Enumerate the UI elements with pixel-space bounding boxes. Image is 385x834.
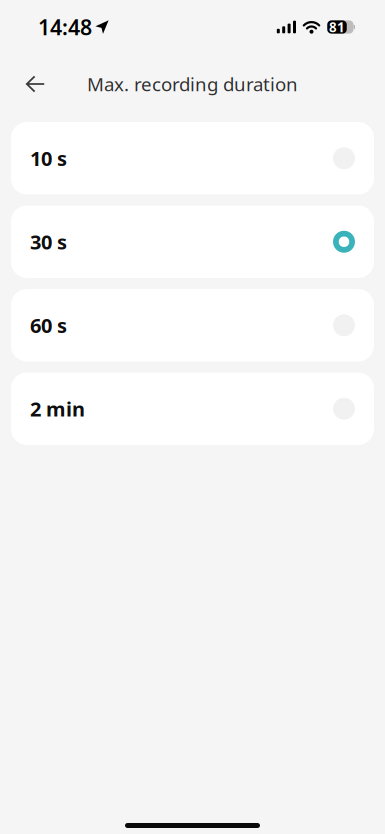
button[interactable]: 10 s [11,122,374,194]
staticText: 14:48 [38,13,92,41]
staticText: 60 s [30,312,67,339]
staticText: 2 min [30,395,85,422]
button[interactable]: Back [0,54,59,114]
staticText: Max. recording duration [87,72,298,96]
button[interactable]: 2 min [11,372,374,445]
button[interactable]: 30 s [11,205,374,278]
button[interactable]: 60 s [11,289,374,361]
staticText: 81 [329,18,345,36]
staticText: 10 s [30,145,67,172]
staticText: 30 s [30,228,67,255]
